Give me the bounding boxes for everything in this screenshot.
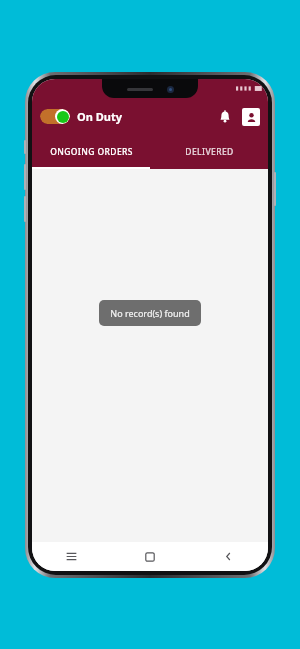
- button[interactable]: Back: [189, 542, 268, 571]
- staticText: No record(s) found: [110, 307, 190, 319]
- staticText: On Duty: [77, 109, 122, 124]
- button[interactable]: Recent apps: [32, 542, 110, 571]
- button[interactable]: Profile: [242, 108, 260, 126]
- staticText: DELIVERED: [185, 146, 234, 158]
- button[interactable]: Duty toggle: [40, 109, 70, 124]
- staticText: ONGOING ORDERS: [50, 146, 133, 158]
- button[interactable]: DELIVERED: [150, 135, 268, 169]
- button[interactable]: Notifications: [212, 104, 238, 130]
- button[interactable]: Home: [110, 542, 189, 571]
- button[interactable]: ONGOING ORDERS: [32, 135, 150, 169]
